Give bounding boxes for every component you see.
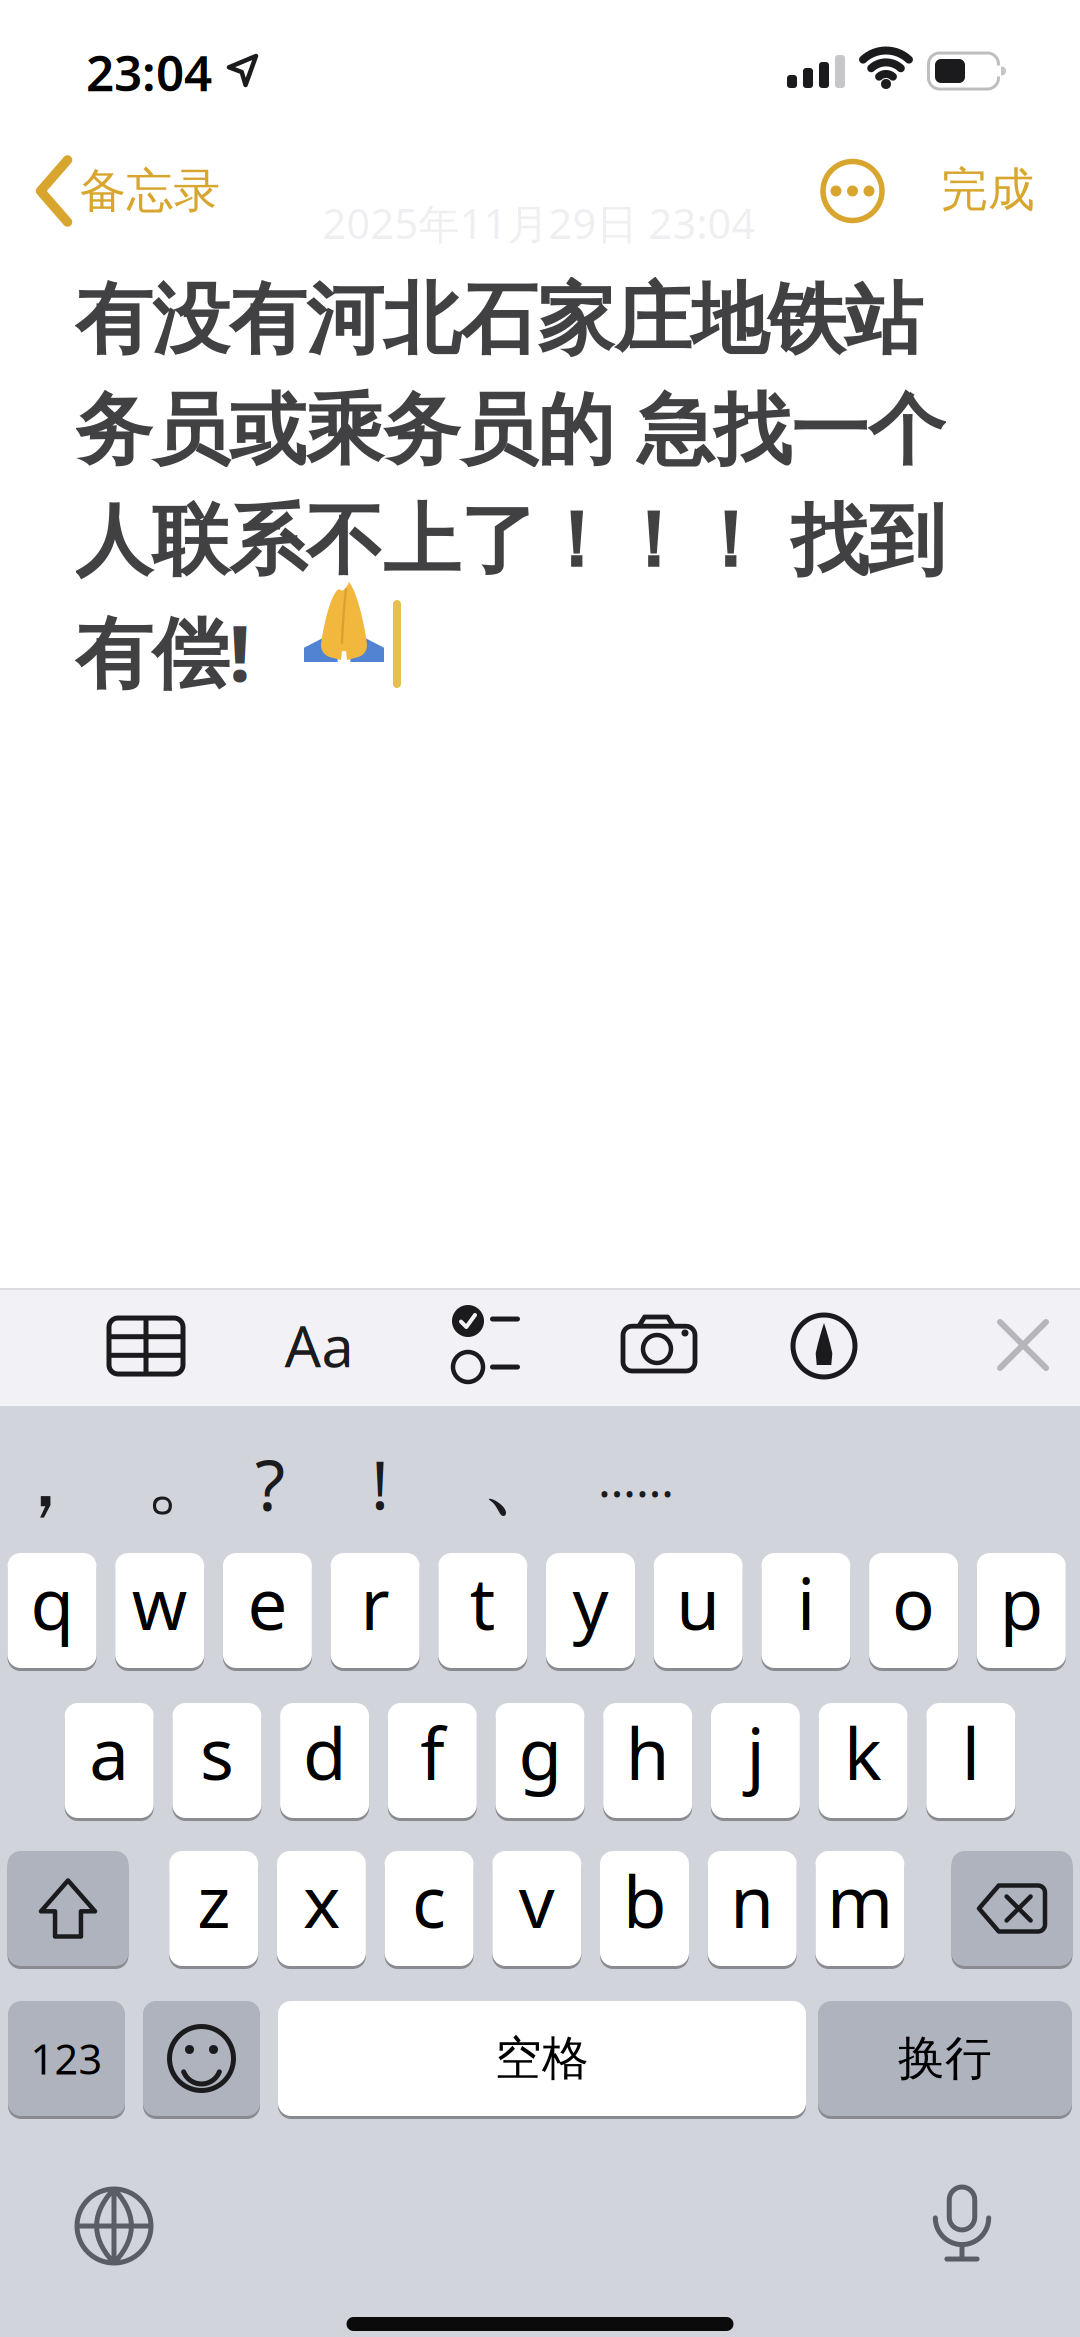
staticText: 有没有河北石家庄地铁站 <box>75 272 922 367</box>
button[interactable]: 格式 <box>264 1290 374 1400</box>
button[interactable]: r <box>331 1551 420 1669</box>
button[interactable]: 听写 <box>907 2169 1017 2279</box>
staticText: 人联系不上了！！！ 找到 <box>75 493 945 588</box>
staticText: i <box>797 1556 815 1649</box>
staticText: 23:04 <box>86 39 212 105</box>
staticText: k <box>844 1706 882 1799</box>
staticText: …… <box>598 1447 674 1511</box>
staticText: f <box>420 1706 444 1799</box>
button[interactable]: 插入表格 <box>91 1291 201 1401</box>
button[interactable]: …… <box>571 1434 701 1524</box>
button[interactable]: Shift <box>7 1849 128 1967</box>
button[interactable]: w <box>115 1551 204 1669</box>
button[interactable]: e <box>223 1551 312 1669</box>
button[interactable]: 完成 <box>941 161 1035 219</box>
button[interactable]: a <box>65 1701 154 1819</box>
button[interactable]: 核对清单 <box>432 1289 542 1399</box>
button[interactable]: s <box>172 1701 261 1819</box>
button[interactable]: 返回 备忘录 <box>37 158 220 224</box>
staticText: w <box>132 1556 188 1649</box>
staticText: j <box>746 1706 764 1799</box>
button[interactable]: 删除 <box>951 1849 1072 1967</box>
button[interactable]: 。 <box>122 1432 252 1522</box>
staticText: u <box>676 1556 720 1649</box>
staticText: 。 <box>144 1425 229 1529</box>
staticText: 换行 <box>898 2030 992 2087</box>
button[interactable]: h <box>603 1701 692 1819</box>
button[interactable]: y <box>546 1551 635 1669</box>
button[interactable]: 换行 <box>818 1999 1072 2117</box>
staticText: t <box>470 1556 496 1649</box>
staticText: 、 <box>480 1425 565 1529</box>
button[interactable]: z <box>169 1849 258 1967</box>
button[interactable]: l <box>926 1701 1015 1819</box>
staticText: ! <box>371 1440 389 1528</box>
staticText: b <box>623 1854 666 1947</box>
staticText: v <box>519 1854 555 1947</box>
staticText: c <box>412 1854 446 1947</box>
button[interactable]: t <box>438 1551 527 1669</box>
button[interactable]: x <box>277 1849 366 1967</box>
button[interactable]: 空格 <box>278 1999 806 2117</box>
button[interactable]: p <box>977 1551 1066 1669</box>
button[interactable]: ? <box>205 1439 335 1529</box>
button[interactable]: o <box>869 1551 958 1669</box>
button[interactable]: m <box>815 1849 904 1967</box>
staticText: y <box>572 1556 608 1649</box>
staticText: o <box>892 1556 935 1649</box>
staticText: 备忘录 <box>79 162 220 220</box>
staticText: m <box>827 1854 893 1947</box>
staticText: Aa <box>284 1307 353 1383</box>
button[interactable]: 标记 <box>769 1291 879 1401</box>
staticText: z <box>197 1854 230 1947</box>
staticText: n <box>730 1854 774 1947</box>
button[interactable]: k <box>819 1701 908 1819</box>
staticText: a <box>89 1706 129 1799</box>
button[interactable]: 更多 <box>821 160 883 222</box>
button[interactable]: g <box>495 1701 584 1819</box>
button[interactable]: 123 <box>8 1999 125 2117</box>
staticText: q <box>30 1556 73 1649</box>
staticText: 完成 <box>941 161 1035 219</box>
staticText: l <box>962 1706 980 1799</box>
button[interactable]: v <box>492 1849 581 1967</box>
button[interactable]: 拍照或录像 <box>604 1288 714 1398</box>
button[interactable]: q <box>7 1551 96 1669</box>
staticText: d <box>303 1706 346 1799</box>
staticText: p <box>1000 1556 1043 1649</box>
staticText: ? <box>255 1438 285 1530</box>
staticText: x <box>303 1854 340 1947</box>
button[interactable]: n <box>708 1849 797 1967</box>
button[interactable]: b <box>600 1849 689 1967</box>
button[interactable]: ! <box>315 1439 445 1529</box>
staticText: 有偿! <box>75 600 251 703</box>
button[interactable]: d <box>280 1701 369 1819</box>
button[interactable]: j <box>711 1701 800 1819</box>
staticText: ， <box>1 1423 89 1531</box>
button[interactable]: 关闭键盘 <box>973 1295 1073 1395</box>
button[interactable]: ， <box>0 1432 110 1522</box>
staticText: 2025年11月29日 23:04 <box>322 196 755 250</box>
staticText: r <box>361 1556 390 1649</box>
staticText: 务员或乘务员的 急找一个 <box>75 383 945 478</box>
staticText: 空格 <box>495 2030 589 2087</box>
staticText: e <box>247 1556 287 1649</box>
staticText: s <box>200 1706 234 1799</box>
staticText: 123 <box>30 2031 102 2086</box>
button[interactable]: i <box>761 1551 850 1669</box>
button[interactable]: f <box>388 1701 477 1819</box>
staticText: g <box>518 1706 561 1799</box>
button[interactable]: c <box>385 1849 474 1967</box>
staticText: h <box>626 1706 670 1799</box>
button[interactable]: 、 <box>458 1432 588 1522</box>
button[interactable]: u <box>654 1551 743 1669</box>
button[interactable]: 表情 <box>143 1999 260 2117</box>
button[interactable]: 下一个键盘 <box>59 2171 169 2281</box>
